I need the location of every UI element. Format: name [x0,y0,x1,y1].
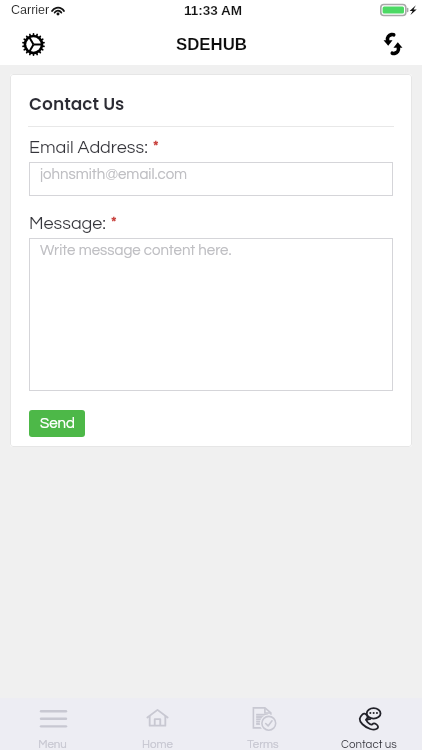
staticText: Send [40,416,75,431]
button[interactable]: Menu [0,698,105,750]
staticText: Carrier [11,3,50,17]
button[interactable]: johnsmith@email.com [29,162,393,196]
staticText: * [153,139,159,154]
staticText: SDEHUB [176,35,247,54]
staticText: johnsmith@email.com [40,167,188,182]
button[interactable]: Terms [210,698,316,750]
staticText: 11:33 AM [184,3,243,18]
staticText: Menu [38,739,67,750]
button[interactable]: Settings [17,28,49,60]
staticText: Message: [29,214,106,233]
button[interactable]: Contact us [316,698,422,750]
staticText: * [111,215,117,230]
staticText: Write message content here. [40,243,232,258]
staticText: Home [142,739,173,750]
staticText: Email Address: [29,138,148,157]
staticText: Contact Us [29,92,125,116]
button[interactable]: Home [105,698,210,750]
button[interactable]: Send [29,410,85,437]
staticText: Contact us [341,739,397,750]
button[interactable]: Sync [377,28,409,60]
staticText: Terms [247,739,279,750]
button[interactable]: Write message content here. [29,238,393,391]
